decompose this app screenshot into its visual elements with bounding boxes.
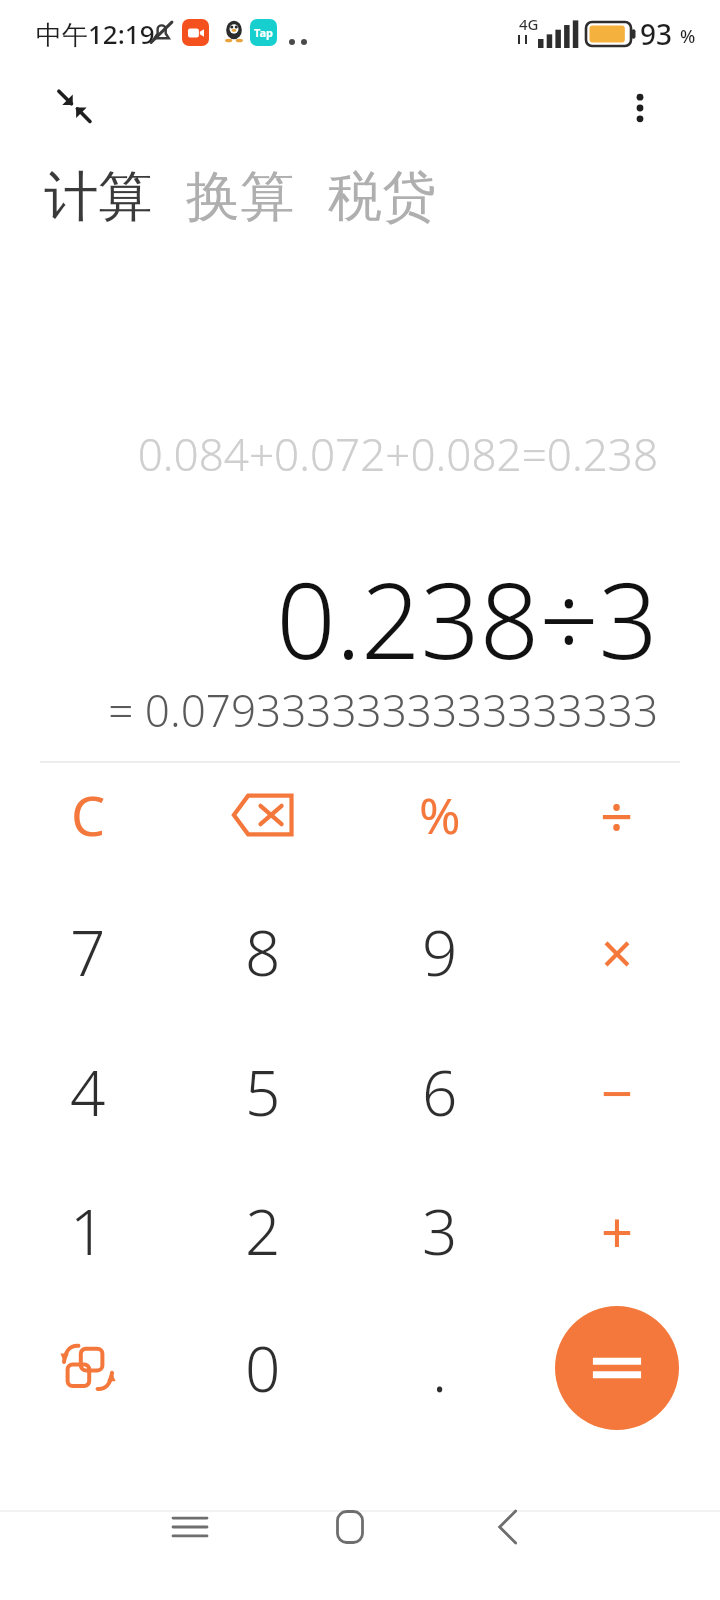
button[interactable]: 5 — [188, 1017, 338, 1167]
staticText: . — [432, 1326, 448, 1410]
button[interactable]: Minus — [542, 1017, 692, 1167]
button[interactable]: Menu — [130, 1467, 250, 1587]
button[interactable]: Clear — [13, 740, 163, 890]
staticText: ÷ — [600, 776, 634, 855]
button[interactable]: Backspace — [188, 740, 338, 890]
staticText: − — [601, 1054, 634, 1130]
staticText: % — [680, 24, 696, 49]
staticText: 4 — [70, 1050, 106, 1134]
staticText: 6 — [422, 1050, 458, 1134]
staticText: 0 — [245, 1326, 281, 1410]
staticText: 2 — [245, 1189, 281, 1273]
button[interactable]: 1 — [13, 1156, 163, 1306]
staticText: % — [419, 781, 461, 849]
button[interactable]: Unit converter — [13, 1293, 163, 1443]
staticText: 7 — [70, 910, 106, 994]
staticText: 中午12:19 — [36, 16, 155, 52]
button[interactable]: 8 — [188, 877, 338, 1027]
staticText: = 0.0793333333333333333 — [0, 680, 658, 740]
staticText: 1 — [70, 1189, 106, 1273]
staticText: 93 — [640, 15, 673, 53]
staticText: 0.238÷3 — [0, 548, 658, 690]
staticText: 5 — [245, 1050, 281, 1134]
button[interactable]: 6 — [365, 1017, 515, 1167]
button[interactable]: More options — [604, 72, 676, 144]
button[interactable]: 3 — [365, 1156, 515, 1306]
button[interactable]: 2 — [188, 1156, 338, 1306]
staticText: + — [601, 1193, 634, 1269]
button[interactable]: Home — [290, 1467, 410, 1587]
button[interactable]: Plus — [542, 1156, 692, 1306]
button[interactable]: 7 — [13, 877, 163, 1027]
staticText: Tap — [254, 25, 274, 40]
staticText: 计算 — [44, 163, 152, 231]
button[interactable]: Collapse — [38, 72, 110, 144]
button[interactable]: Divide — [542, 740, 692, 890]
staticText: C — [71, 778, 106, 852]
button[interactable]: Back — [448, 1467, 568, 1587]
staticText: 3 — [422, 1189, 458, 1273]
staticText: 9 — [422, 910, 458, 994]
staticText: 换算 — [186, 163, 294, 231]
button[interactable]: 税贷 — [326, 163, 438, 231]
button[interactable]: 0 — [188, 1293, 338, 1443]
button[interactable]: Percent — [365, 740, 515, 890]
button[interactable]: 9 — [365, 877, 515, 1027]
button[interactable]: 计算 — [42, 163, 154, 231]
staticText: 4G — [519, 14, 539, 34]
button[interactable]: 4 — [13, 1017, 163, 1167]
button[interactable]: 换算 — [184, 163, 296, 231]
button[interactable]: Multiply — [542, 877, 692, 1027]
staticText: × — [601, 914, 634, 990]
staticText: 税贷 — [328, 163, 436, 231]
staticText: 0.084+0.072+0.082=0.238 — [0, 424, 658, 484]
staticText: 8 — [245, 910, 281, 994]
button[interactable]: Decimal point — [365, 1293, 515, 1443]
button[interactable]: Equals — [555, 1306, 679, 1430]
